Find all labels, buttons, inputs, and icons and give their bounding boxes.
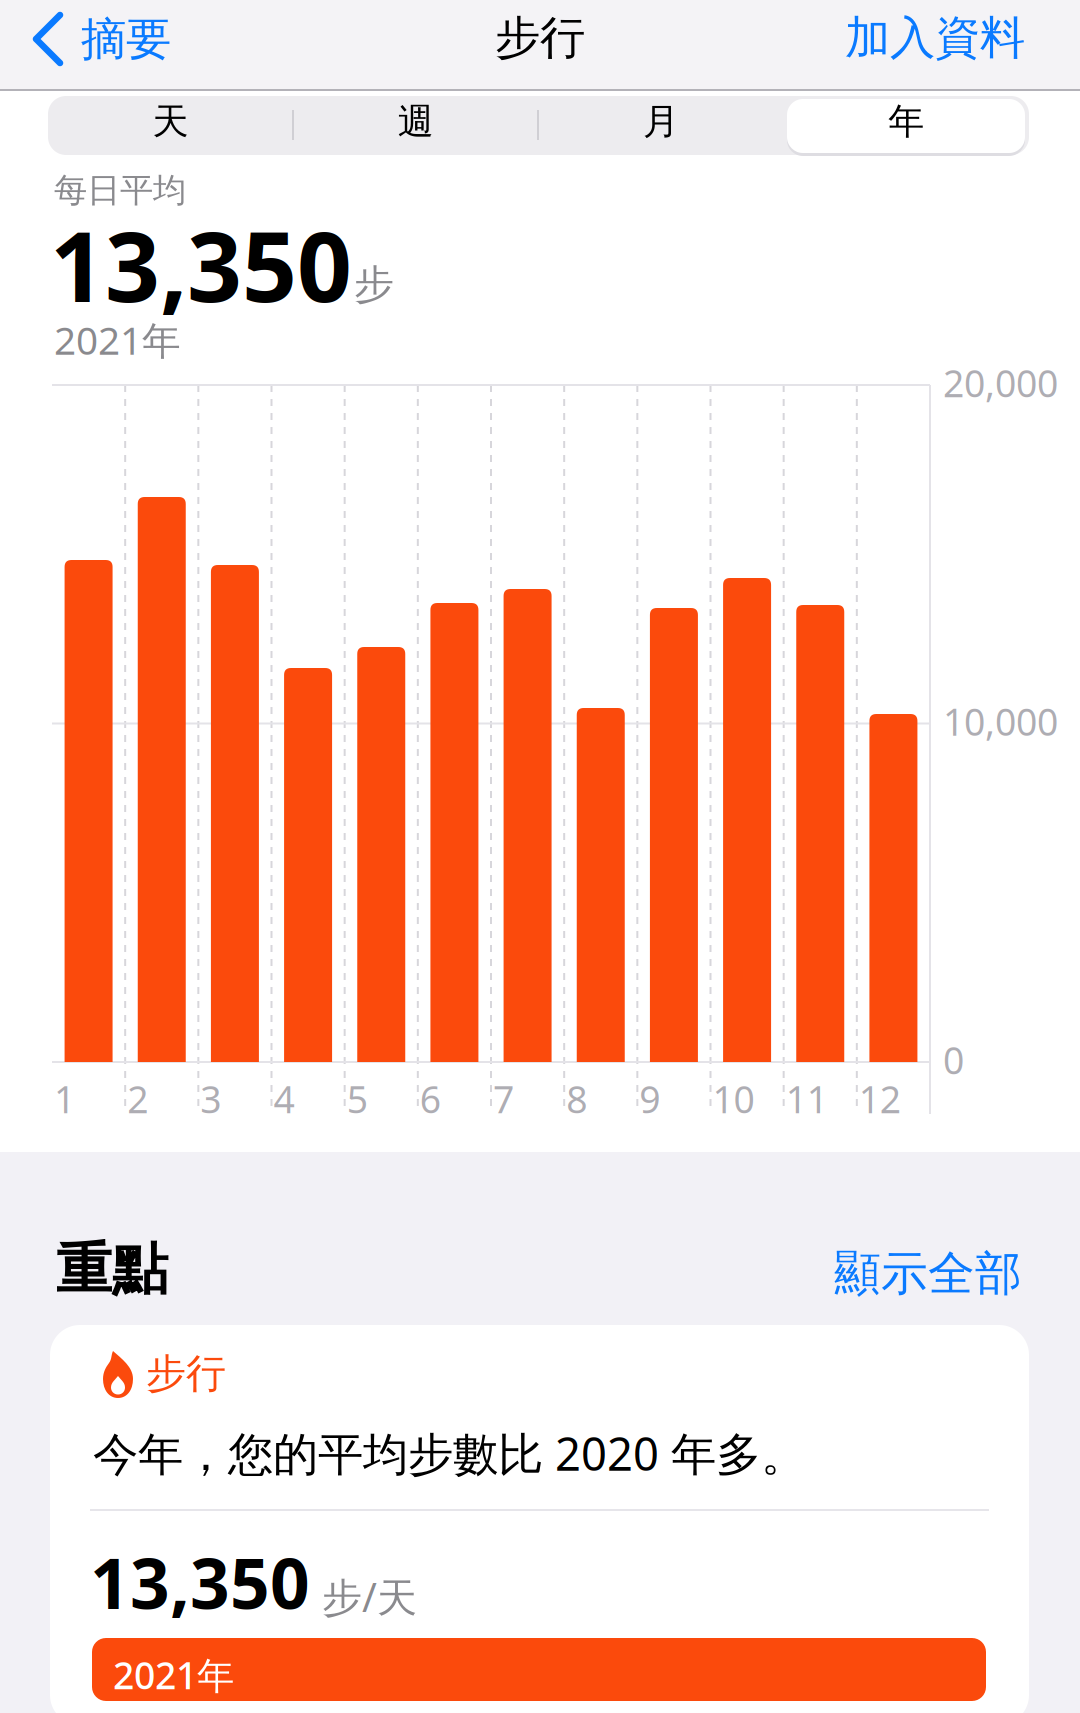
staticText: 今年，您的平均步數比 2020 年多。 [93, 1423, 806, 1483]
staticText: 2021年 [113, 1650, 234, 1700]
button[interactable]: 月 [541, 92, 781, 151]
staticText: 11 [786, 1074, 828, 1124]
staticText: 步/天 [322, 1570, 417, 1623]
staticText: 每日平均 [54, 170, 186, 211]
staticText: 10 [712, 1074, 754, 1124]
staticText: 步 [354, 260, 394, 309]
staticText: 7 [493, 1074, 514, 1124]
staticText: 重點 [56, 1235, 168, 1304]
staticText: 年 [888, 99, 924, 144]
staticText: 12 [859, 1074, 901, 1124]
staticText: 13,350 [50, 201, 352, 328]
button[interactable]: 摘要 [0, 0, 171, 89]
staticText: 13,350 [90, 1536, 310, 1628]
button[interactable]: 顯示全部 [834, 1245, 1022, 1302]
staticText: 10,000 [943, 696, 1058, 746]
staticText: 摘要 [81, 12, 171, 67]
staticText: 2021年 [54, 314, 181, 365]
staticText: 5 [347, 1074, 368, 1124]
staticText: 6 [420, 1074, 441, 1124]
staticText: 加入資料 [845, 10, 1025, 66]
staticText: 9 [639, 1074, 660, 1124]
staticText: 天 [152, 99, 188, 144]
button[interactable]: 週 [296, 92, 536, 151]
staticText: 月 [643, 99, 679, 144]
staticText: 步行 [146, 1349, 226, 1398]
staticText: 20,000 [943, 358, 1058, 408]
staticText: 8 [566, 1074, 587, 1124]
button[interactable]: 步行 [50, 1325, 1080, 1713]
staticText: 顯示全部 [834, 1245, 1022, 1302]
button[interactable]: 年 [786, 92, 1026, 151]
staticText: 步行 [495, 10, 585, 66]
staticText: 2 [127, 1074, 148, 1124]
staticText: 週 [398, 99, 434, 144]
staticText: 4 [273, 1074, 294, 1124]
button[interactable]: 天 [50, 92, 290, 151]
staticText: 0 [943, 1035, 964, 1085]
staticText: 3 [200, 1074, 221, 1124]
staticText: 1 [54, 1074, 75, 1124]
button[interactable]: 加入資料 [845, 10, 1025, 66]
